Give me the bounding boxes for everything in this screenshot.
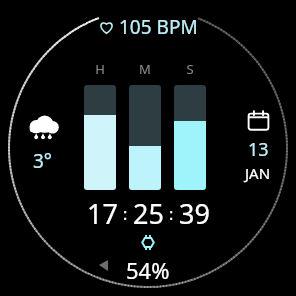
staticText: : (123, 203, 128, 225)
staticText: 13 (248, 137, 269, 162)
staticText: 39 (179, 195, 210, 232)
button[interactable]: 17 (87, 195, 210, 232)
button[interactable]: Weather 3 degrees, rain (26, 115, 60, 174)
staticText: : (169, 203, 174, 225)
button[interactable]: Calendar, 13 January (245, 109, 271, 183)
staticText: M (129, 60, 161, 78)
button[interactable]: Battery 54 percent (126, 234, 170, 285)
staticText: JAN (245, 163, 271, 183)
staticText: 25 (133, 195, 164, 232)
staticText: 17 (87, 195, 118, 232)
staticText: 105 BPM (119, 14, 198, 40)
button[interactable]: H (84, 60, 212, 190)
button[interactable]: Heart rate 105 BPM (99, 14, 198, 40)
staticText: 54% (126, 255, 170, 285)
staticText: S (174, 60, 206, 78)
staticText: 3° (33, 148, 53, 174)
staticText: H (84, 60, 116, 78)
